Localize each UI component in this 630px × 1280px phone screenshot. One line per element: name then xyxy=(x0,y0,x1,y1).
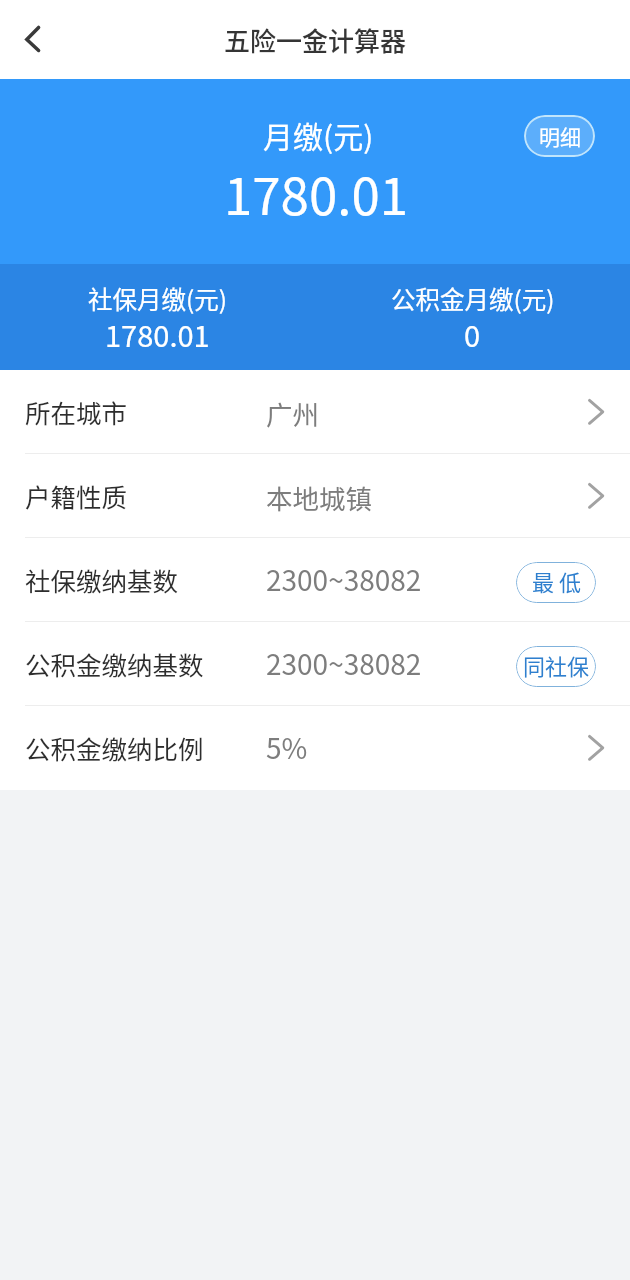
staticText: 同社保 xyxy=(523,649,590,681)
staticText: 本地城镇 xyxy=(266,478,372,516)
staticText: 五险一金计算器 xyxy=(224,21,407,59)
staticText: 广州 xyxy=(266,394,319,432)
staticText: 2300~38082 xyxy=(266,559,422,600)
button[interactable]: 社保缴纳基数 xyxy=(0,538,630,622)
staticText: 1780.01 xyxy=(224,156,409,230)
button[interactable]: 公积金缴纳基数 xyxy=(0,622,630,706)
staticText: 5% xyxy=(266,727,308,768)
button[interactable]: 同社保 xyxy=(516,646,596,687)
button[interactable]: 公积金缴纳比例 xyxy=(0,706,630,790)
staticText: 公积金缴纳比例 xyxy=(25,729,204,766)
button[interactable]: 所在城市 xyxy=(0,370,630,454)
staticText: 最 低 xyxy=(532,565,581,597)
button[interactable]: 最 低 xyxy=(516,562,596,603)
staticText: 户籍性质 xyxy=(25,477,128,514)
staticText: 社保月缴(元) xyxy=(88,281,228,316)
staticText: 2300~38082 xyxy=(266,643,422,684)
staticText: 所在城市 xyxy=(25,393,128,430)
button[interactable]: 明细 xyxy=(524,115,595,157)
staticText: 1780.01 xyxy=(105,313,210,355)
staticText: 月缴(元) xyxy=(263,113,374,156)
staticText: 明细 xyxy=(539,121,581,151)
button[interactable]: Back xyxy=(8,16,56,64)
staticText: 公积金缴纳基数 xyxy=(25,645,204,682)
staticText: 公积金月缴(元) xyxy=(391,281,555,316)
staticText: 社保缴纳基数 xyxy=(25,561,179,598)
staticText: 0 xyxy=(464,313,481,355)
button[interactable]: 户籍性质 xyxy=(0,454,630,538)
